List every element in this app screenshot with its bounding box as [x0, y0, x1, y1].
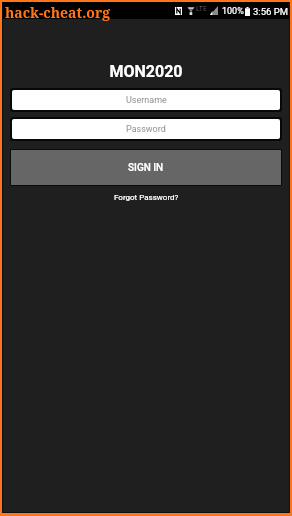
staticText: 100% — [222, 6, 244, 17]
other: Wi-Fi — [187, 6, 195, 15]
other: NFC — [175, 7, 182, 15]
button[interactable]: Forgot Password? — [108, 189, 185, 206]
other: Battery full — [245, 7, 250, 16]
other: Mobile signal — [210, 6, 218, 15]
staticText: MON2020 — [3, 62, 289, 81]
staticText: Password — [126, 124, 166, 135]
staticText: 3:56 PM — [253, 6, 288, 17]
button[interactable]: Password — [12, 119, 280, 139]
staticText: SIGN IN — [128, 162, 164, 174]
staticText: Username — [126, 95, 167, 106]
staticText: hack-cheat.org — [5, 3, 111, 22]
button[interactable]: Username — [12, 90, 280, 110]
staticText: LTE — [196, 5, 207, 13]
button[interactable]: SIGN IN — [11, 150, 281, 185]
